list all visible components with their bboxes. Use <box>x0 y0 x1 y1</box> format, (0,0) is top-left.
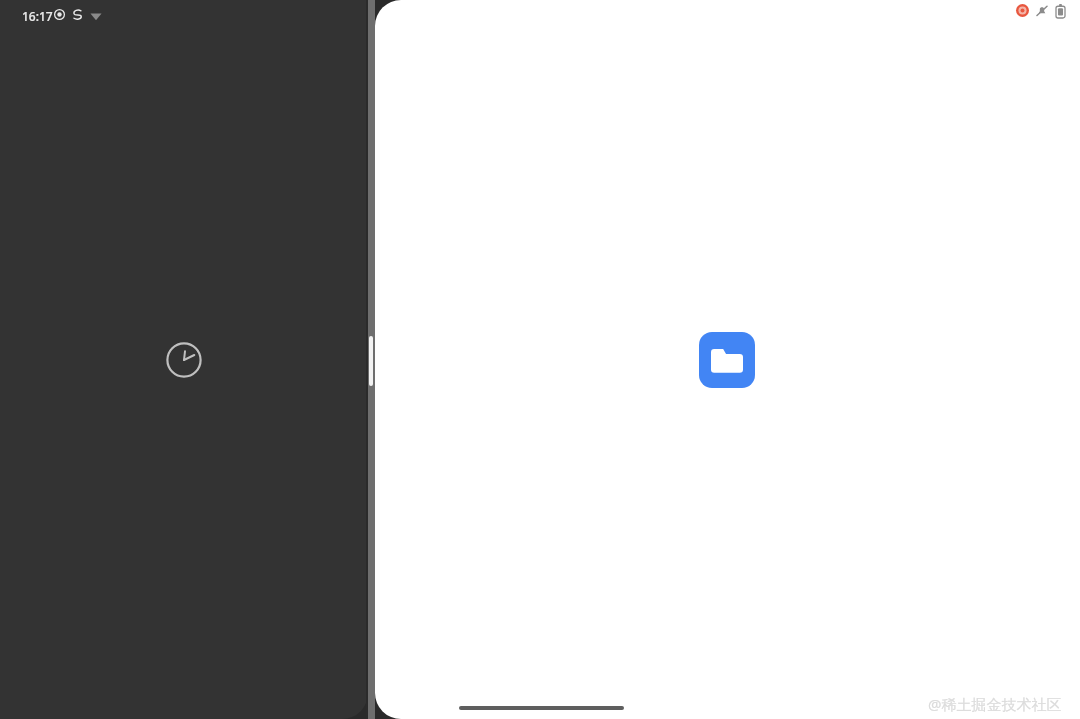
staticText: 16:17 <box>22 8 53 24</box>
staticText: @稀土掘金技术社区 <box>928 694 1062 714</box>
button[interactable]: Files <box>699 332 755 388</box>
button[interactable]: Clock <box>166 342 202 378</box>
button[interactable]: Resize split screen <box>369 336 373 386</box>
